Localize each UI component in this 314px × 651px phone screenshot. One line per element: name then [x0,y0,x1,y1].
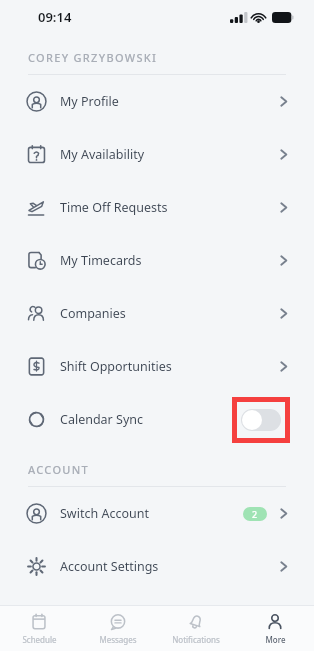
staticText: My Availability [60,146,145,163]
staticText: 2 [252,508,258,520]
button[interactable]: Switch Account [0,487,314,540]
button[interactable]: Time Off Requests [0,181,314,234]
staticText: COREY GRZYBOWSKI [28,50,158,65]
staticText: Account Settings [60,558,159,575]
button[interactable]: Shift Opportunities [0,340,314,393]
staticText: Notifications [172,634,220,645]
button[interactable]: My Timecards [0,234,314,287]
button[interactable]: Calendar Sync [0,393,314,446]
button[interactable]: Messages [79,606,157,651]
button[interactable]: My Availability [0,128,314,181]
staticText: My Timecards [60,252,142,269]
staticText: ACCOUNT [28,462,90,477]
button[interactable]: Notifications [157,606,235,651]
staticText: 09:14 [38,8,72,26]
staticText: Time Off Requests [60,199,168,216]
staticText: More [265,634,286,645]
button[interactable]: More [236,606,314,651]
button[interactable]: Schedule [0,606,78,651]
staticText: Schedule [22,634,57,645]
button[interactable]: My Profile [0,75,314,128]
staticText: Companies [60,305,126,322]
staticText: Shift Opportunities [60,358,172,375]
staticText: My Profile [60,93,119,110]
button[interactable]: Companies [0,287,314,340]
button[interactable]: Account Settings [0,540,314,593]
button[interactable]: Calendar Sync toggle [241,409,281,431]
staticText: Calendar Sync [60,411,143,428]
staticText: Messages [99,634,137,645]
staticText: Switch Account [60,505,149,522]
